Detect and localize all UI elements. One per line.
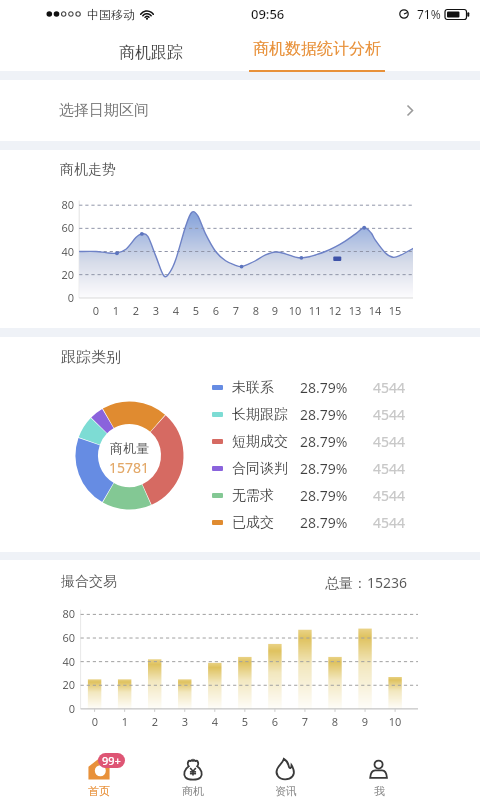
staticText: 未联系 bbox=[232, 379, 274, 397]
staticText: 6 bbox=[264, 714, 286, 729]
button[interactable]: News bbox=[240, 743, 332, 800]
staticText: 99+ bbox=[102, 753, 121, 768]
staticText: 跟踪类别 bbox=[61, 348, 121, 367]
staticText: 28.79% bbox=[300, 459, 348, 478]
staticText: 80 bbox=[49, 606, 75, 621]
staticText: 5 bbox=[234, 714, 256, 729]
staticText: 选择日期区间 bbox=[59, 101, 149, 120]
staticText: 4544 bbox=[373, 405, 406, 424]
staticText: 60 bbox=[48, 220, 74, 235]
staticText: 已成交 bbox=[232, 514, 274, 532]
staticText: 10 bbox=[384, 714, 406, 729]
staticText: 71% bbox=[417, 6, 441, 22]
staticText: 4544 bbox=[373, 486, 406, 505]
staticText: 3 bbox=[147, 303, 165, 318]
staticText: 撮合交易 bbox=[61, 573, 117, 591]
staticText: 7 bbox=[294, 714, 316, 729]
staticText: 4544 bbox=[373, 432, 406, 451]
staticText: 40 bbox=[48, 244, 74, 259]
staticText: 首页 bbox=[88, 784, 110, 798]
staticText: 20 bbox=[49, 677, 75, 692]
staticText: 14 bbox=[366, 303, 384, 318]
staticText: 28.79% bbox=[300, 378, 348, 397]
staticText: 1 bbox=[114, 714, 136, 729]
staticText: 28.79% bbox=[300, 513, 348, 532]
staticText: 40 bbox=[49, 654, 75, 669]
staticText: 9 bbox=[354, 714, 376, 729]
staticText: 中国移动 bbox=[87, 7, 135, 22]
staticText: 我 bbox=[374, 784, 385, 798]
staticText: 长期跟踪 bbox=[232, 406, 288, 424]
staticText: 10 bbox=[286, 303, 304, 318]
button[interactable]: 商机跟踪 bbox=[110, 28, 192, 71]
staticText: 60 bbox=[49, 630, 75, 645]
staticText: 09:56 bbox=[251, 5, 285, 23]
staticText: 资讯 bbox=[275, 784, 297, 798]
staticText: 4 bbox=[204, 714, 226, 729]
staticText: 12 bbox=[326, 303, 344, 318]
staticText: 6 bbox=[207, 303, 225, 318]
staticText: 4544 bbox=[373, 513, 406, 532]
staticText: 商机数据统计分析 bbox=[253, 39, 381, 59]
staticText: 3 bbox=[174, 714, 196, 729]
staticText: 4 bbox=[167, 303, 185, 318]
staticText: 15781 bbox=[109, 458, 150, 477]
staticText: 8 bbox=[324, 714, 346, 729]
staticText: 商机跟踪 bbox=[119, 43, 183, 63]
button[interactable]: Home bbox=[53, 743, 145, 800]
staticText: 短期成交 bbox=[232, 433, 288, 451]
button[interactable]: Profile bbox=[333, 743, 425, 800]
staticText: 5 bbox=[187, 303, 205, 318]
staticText: 28.79% bbox=[300, 432, 348, 451]
staticText: 9 bbox=[266, 303, 284, 318]
staticText: 11 bbox=[306, 303, 324, 318]
staticText: 0 bbox=[48, 290, 74, 305]
staticText: 28.79% bbox=[300, 405, 348, 424]
staticText: 7 bbox=[227, 303, 245, 318]
staticText: 13 bbox=[346, 303, 364, 318]
staticText: 商机 bbox=[182, 784, 204, 798]
staticText: 0 bbox=[84, 714, 106, 729]
staticText: 4544 bbox=[373, 459, 406, 478]
button[interactable]: Opportunities bbox=[147, 743, 239, 800]
staticText: 1 bbox=[107, 303, 125, 318]
staticText: 15 bbox=[386, 303, 404, 318]
staticText: 4544 bbox=[373, 378, 406, 397]
staticText: 2 bbox=[127, 303, 145, 318]
staticText: 商机量 bbox=[110, 440, 149, 456]
staticText: 80 bbox=[48, 197, 74, 212]
staticText: 商机走势 bbox=[60, 161, 116, 179]
staticText: 0 bbox=[87, 303, 105, 318]
staticText: 2 bbox=[144, 714, 166, 729]
staticText: 无需求 bbox=[232, 487, 274, 505]
staticText: 20 bbox=[48, 267, 74, 282]
staticText: 28.79% bbox=[300, 486, 348, 505]
staticText: 合同谈判 bbox=[232, 460, 288, 478]
staticText: 0 bbox=[49, 701, 75, 716]
staticText: 8 bbox=[247, 303, 265, 318]
button[interactable]: 商机数据统计分析 bbox=[244, 28, 390, 71]
staticText: 总量：15236 bbox=[325, 573, 408, 592]
button[interactable]: 选择日期区间 bbox=[0, 80, 480, 141]
